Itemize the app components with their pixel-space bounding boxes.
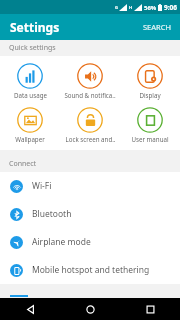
staticText: H bbox=[129, 5, 133, 10]
button[interactable]: Mobile hotspot and tethering bbox=[0, 256, 180, 284]
staticText: Mobile hotspot and tethering bbox=[32, 264, 150, 276]
button[interactable]: Airplane mode bbox=[0, 228, 180, 256]
button[interactable]: Lock screen and.. bbox=[60, 104, 120, 146]
staticText: User manual bbox=[131, 135, 169, 143]
button[interactable]: Back bbox=[0, 298, 60, 320]
staticText: SEARCH bbox=[143, 22, 172, 32]
staticText: Wallpaper bbox=[15, 135, 45, 143]
staticText: 56% bbox=[144, 4, 157, 12]
staticText: Wi-Fi bbox=[32, 180, 52, 192]
button[interactable]: Home bbox=[60, 298, 120, 320]
staticText: Sound & notifica.. bbox=[64, 91, 116, 99]
button[interactable]: SEARCH bbox=[135, 18, 180, 36]
button[interactable]: Recent apps bbox=[120, 298, 180, 320]
staticText: Quick settings bbox=[9, 43, 56, 53]
button[interactable]: Sound & notifica.. bbox=[60, 60, 120, 102]
button[interactable]: Wi-Fi bbox=[0, 172, 180, 200]
button[interactable]: User manual bbox=[120, 104, 180, 146]
button[interactable]: Data usage bbox=[0, 60, 60, 102]
button[interactable]: Wallpaper bbox=[0, 104, 60, 146]
staticText: 9:06 bbox=[164, 3, 177, 12]
staticText: Lock screen and.. bbox=[65, 135, 116, 143]
staticText: Settings bbox=[10, 19, 60, 35]
staticText: Display bbox=[139, 91, 161, 99]
button[interactable]: Display bbox=[120, 60, 180, 102]
staticText: Bluetooth bbox=[32, 208, 72, 220]
staticText: G bbox=[115, 5, 118, 10]
staticText: Connect bbox=[9, 159, 37, 169]
staticText: Data usage bbox=[14, 91, 47, 99]
staticText: Airplane mode bbox=[32, 236, 91, 248]
button[interactable]: Bluetooth bbox=[0, 200, 180, 228]
